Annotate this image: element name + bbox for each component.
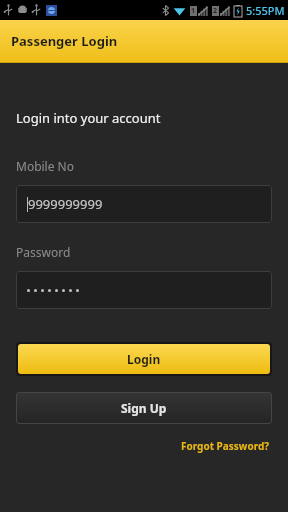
staticText: Mobile No [16,158,74,174]
button[interactable]: Login [16,342,272,376]
button[interactable]: Forgot Password? [179,437,272,455]
button[interactable]: Sign Up [16,392,272,424]
staticText: 2 [213,6,218,16]
staticText: Forgot Password? [181,439,270,453]
staticText: Passenger Login [11,32,118,50]
staticText: 1 [191,6,196,16]
button[interactable]: 9999999999 [16,185,272,223]
staticText: 9999999999 [28,195,103,213]
button[interactable] [16,271,272,309]
staticText: Login into your account [16,109,161,127]
staticText: Login [127,351,161,367]
staticText: Sign Up [121,400,167,416]
staticText: Password [16,244,71,260]
staticText: 5:55PM [246,3,285,18]
